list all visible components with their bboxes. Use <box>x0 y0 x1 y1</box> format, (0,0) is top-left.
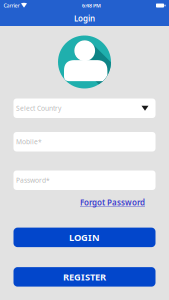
staticText: Select Country <box>16 104 61 113</box>
button[interactable]: REGISTER <box>13 267 155 287</box>
button[interactable]: Select Country <box>13 98 155 118</box>
button[interactable]: Password* <box>13 170 155 190</box>
staticText: LOGIN <box>69 231 100 244</box>
button[interactable]: Forgot Password <box>80 197 145 208</box>
staticText: Login <box>74 13 95 24</box>
button[interactable]: Mobile* <box>13 132 155 151</box>
staticText: Mobile* <box>16 137 42 146</box>
staticText: Password* <box>16 176 50 185</box>
staticText: Carrier <box>3 2 19 9</box>
staticText: 6:48 PM <box>82 2 101 9</box>
button[interactable]: LOGIN <box>13 228 155 247</box>
staticText: REGISTER <box>63 271 106 283</box>
staticText: Forgot Password <box>80 197 145 208</box>
